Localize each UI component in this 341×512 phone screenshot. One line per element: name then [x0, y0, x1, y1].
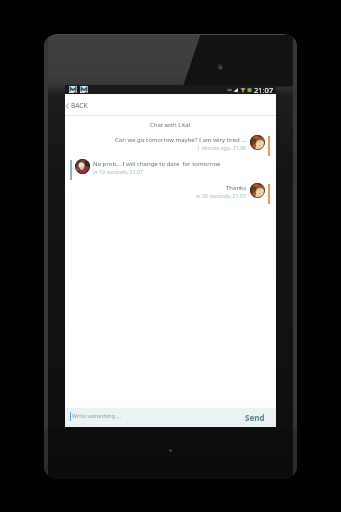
staticText: No prob... I will change to date for tom… — [93, 160, 221, 168]
button[interactable]: Send — [245, 412, 265, 423]
button[interactable]: Write something ... — [65, 408, 234, 427]
staticText: Can we go tomorrow maybe? I am very tire… — [115, 136, 247, 144]
staticText: 1 minute ago, 21:06 — [197, 144, 247, 151]
staticText: in 19 seconds, 21:07 — [93, 168, 144, 175]
button[interactable]: Back — [65, 94, 276, 115]
staticText: Thanks — [226, 184, 247, 192]
button[interactable]: Thanks — [65, 184, 270, 206]
button[interactable]: No prob... I will change to date for tom… — [70, 160, 276, 182]
button[interactable]: Can we go tomorrow maybe? I am very tire… — [65, 136, 270, 158]
staticText: in 26 seconds, 21:07 — [196, 192, 247, 199]
staticText: Chat with Lital — [150, 121, 191, 129]
staticText: 21:07 — [254, 85, 274, 94]
staticText: BACK — [71, 101, 88, 110]
staticText: Send — [245, 412, 265, 423]
staticText: Write something ... — [72, 412, 121, 419]
